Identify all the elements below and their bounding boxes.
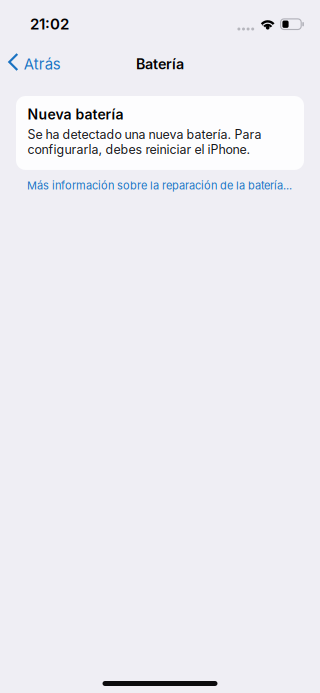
staticText: Atrás — [24, 55, 61, 73]
staticText: Batería — [136, 55, 184, 73]
staticText: 21:02 — [30, 15, 69, 33]
button[interactable]: Más información sobre la reparación de l… — [0, 170, 320, 197]
button[interactable]: Atrás — [0, 46, 69, 82]
staticText: Más información sobre la reparación de l… — [27, 179, 292, 192]
staticText: Se ha detectado una nueva batería. Para … — [27, 127, 261, 157]
staticText: Nueva batería — [27, 106, 123, 123]
